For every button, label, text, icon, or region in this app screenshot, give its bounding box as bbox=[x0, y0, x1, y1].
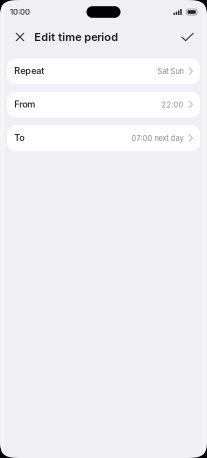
staticText: To bbox=[14, 132, 24, 143]
staticText: 07:00 next day bbox=[131, 134, 183, 143]
button[interactable]: Close bbox=[9, 24, 31, 50]
button[interactable]: Done bbox=[176, 24, 198, 50]
staticText: Repeat bbox=[14, 65, 44, 76]
staticText: 22:00 bbox=[161, 100, 183, 109]
button[interactable]: Repeat bbox=[7, 58, 200, 84]
staticText: Edit time period bbox=[34, 30, 118, 44]
staticText: Sat Sun bbox=[157, 67, 183, 76]
button[interactable]: To bbox=[7, 125, 200, 151]
staticText: From bbox=[14, 99, 35, 110]
button[interactable]: From bbox=[7, 92, 200, 117]
staticText: 10:00 bbox=[10, 7, 30, 17]
